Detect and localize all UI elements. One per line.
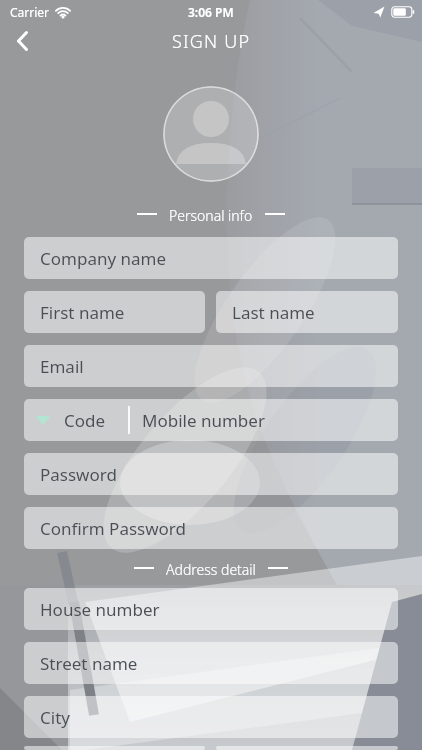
button[interactable]: Street name [24, 642, 398, 684]
staticText: First name [40, 301, 125, 324]
staticText: Password [40, 463, 117, 486]
button[interactable]: Confirm Password [24, 507, 398, 549]
staticText: 3:06 PM [188, 4, 234, 20]
button[interactable]: First name [24, 291, 205, 333]
staticText: Street name [40, 652, 138, 675]
button[interactable]: Company name [24, 237, 398, 279]
staticText: State [40, 746, 81, 750]
staticText: Address detail [166, 560, 256, 576]
staticText: Company name [40, 247, 167, 270]
button[interactable]: State [24, 746, 205, 750]
button[interactable]: House number [24, 588, 398, 630]
staticText: Last name [232, 301, 315, 324]
staticText: Carrier [10, 4, 50, 20]
button[interactable]: Zip code [216, 746, 398, 750]
staticText: SIGN UP [172, 29, 251, 54]
button[interactable]: City [24, 696, 398, 738]
staticText: Mobile number [142, 409, 265, 432]
staticText: Confirm Password [40, 517, 186, 540]
staticText: Email [40, 355, 84, 378]
button[interactable]: Password [24, 453, 398, 495]
button[interactable] [163, 86, 259, 182]
button[interactable]: Code [24, 399, 398, 441]
button[interactable] [6, 24, 40, 58]
staticText: City [40, 706, 70, 729]
staticText: Personal info [169, 206, 253, 222]
button[interactable]: Email [24, 345, 398, 387]
staticText: House number [40, 598, 160, 621]
staticText: Code [64, 409, 106, 432]
button[interactable]: Last name [216, 291, 398, 333]
